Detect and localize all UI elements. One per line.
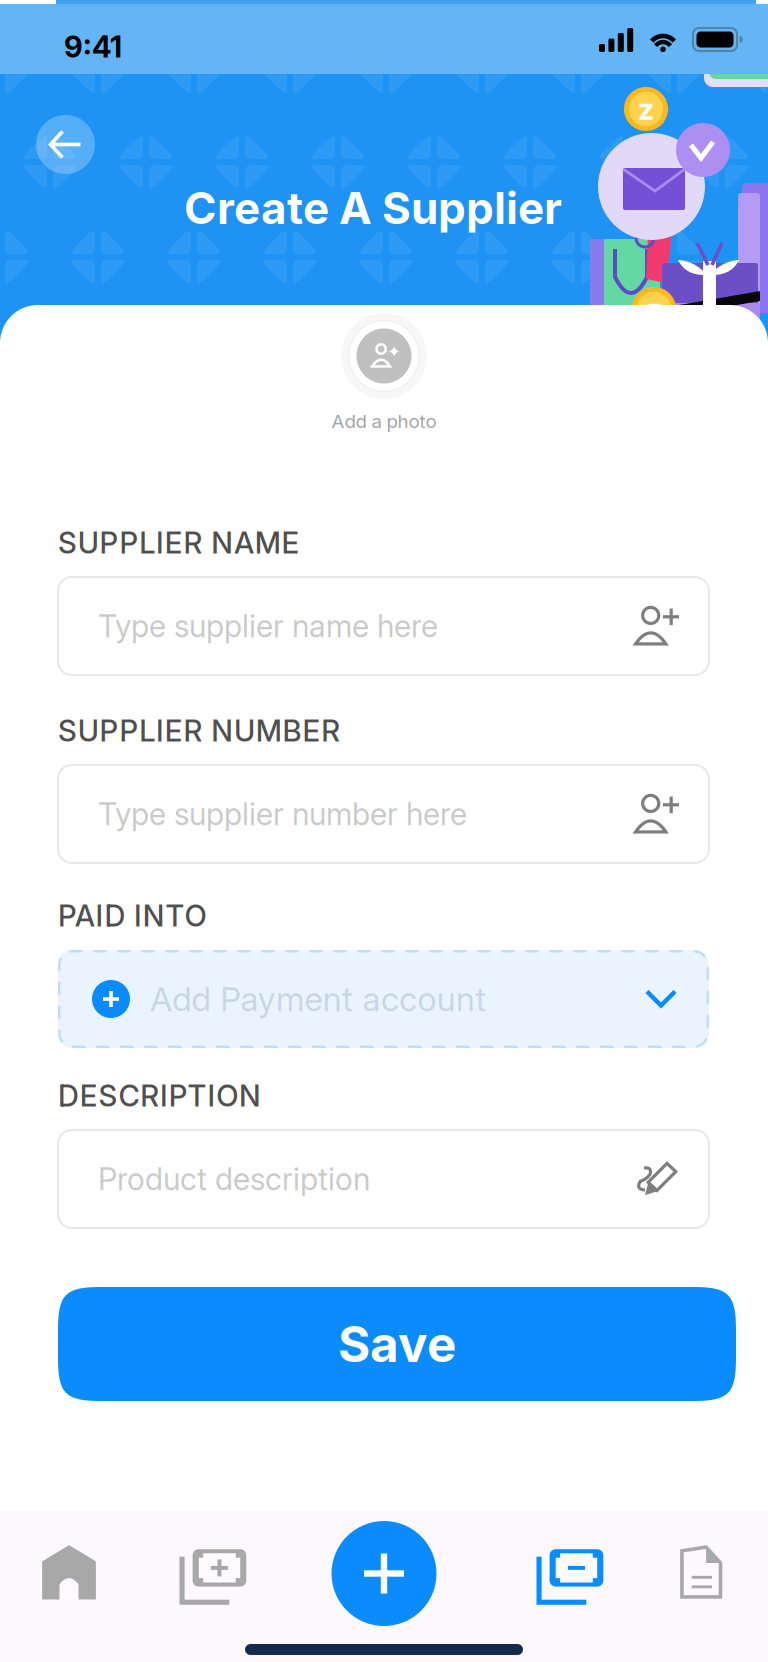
staticText: Type supplier name here	[98, 607, 438, 644]
staticText: DESCRIPTION	[58, 1078, 261, 1113]
button[interactable]: Add a photo	[234, 313, 534, 433]
staticText: Add a photo	[331, 410, 436, 433]
staticText: 9:41	[64, 29, 122, 64]
button[interactable]: Home	[19, 1522, 119, 1622]
staticText: z	[638, 91, 654, 127]
staticText: Type supplier number here	[98, 795, 467, 832]
staticText: Product description	[98, 1160, 370, 1197]
button[interactable]: Back	[36, 115, 95, 174]
staticText: PAID INTO	[58, 898, 206, 933]
button[interactable]: Type supplier name here	[58, 577, 709, 675]
button[interactable]: Reports	[651, 1522, 751, 1622]
button[interactable]: Expense	[520, 1523, 620, 1623]
button[interactable]: Save	[58, 1287, 736, 1401]
button[interactable]: Income	[163, 1523, 263, 1623]
button[interactable]: Type supplier number here	[58, 765, 709, 863]
staticText: Create A Supplier	[184, 181, 562, 235]
staticText: SUPPLIER NAME	[58, 525, 300, 560]
button[interactable]: Add	[331, 1521, 436, 1626]
staticText: Save	[338, 1314, 456, 1374]
button[interactable]: Add Payment account	[58, 950, 709, 1048]
staticText: z	[646, 291, 662, 327]
staticText: SUPPLIER NUMBER	[58, 713, 340, 748]
staticText: Add Payment account	[150, 979, 486, 1019]
button[interactable]: Product description	[58, 1130, 709, 1228]
